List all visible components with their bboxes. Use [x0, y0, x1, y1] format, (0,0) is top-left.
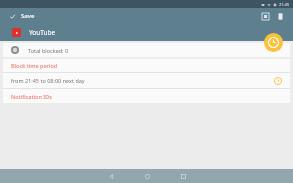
staticText: Save — [21, 12, 35, 20]
staticText: 21:45 — [279, 2, 290, 7]
staticText: from 21:45 to 08:00 next day — [11, 77, 85, 84]
staticText: YouTube — [29, 28, 56, 37]
button[interactable]: Set schedule — [264, 33, 283, 52]
button[interactable]: Total blocked: 0 — [3, 43, 290, 57]
staticText: Block time period — [11, 62, 58, 69]
button[interactable]: Recent apps — [165, 169, 201, 183]
button[interactable]: Layout — [259, 10, 272, 23]
button[interactable]: Notification IDs — [3, 89, 290, 103]
button[interactable]: from 21:45 to 08:00 next day — [3, 73, 290, 88]
button[interactable]: Save — [6, 10, 38, 22]
staticText: Total blocked: 0 — [28, 47, 69, 54]
button[interactable]: Back — [93, 169, 129, 183]
button[interactable]: YouTube — [0, 24, 293, 41]
button[interactable]: Delete — [274, 10, 287, 23]
staticText: Notification IDs — [11, 93, 52, 100]
button[interactable]: Block time period — [3, 59, 290, 72]
button[interactable]: Home — [129, 169, 165, 183]
